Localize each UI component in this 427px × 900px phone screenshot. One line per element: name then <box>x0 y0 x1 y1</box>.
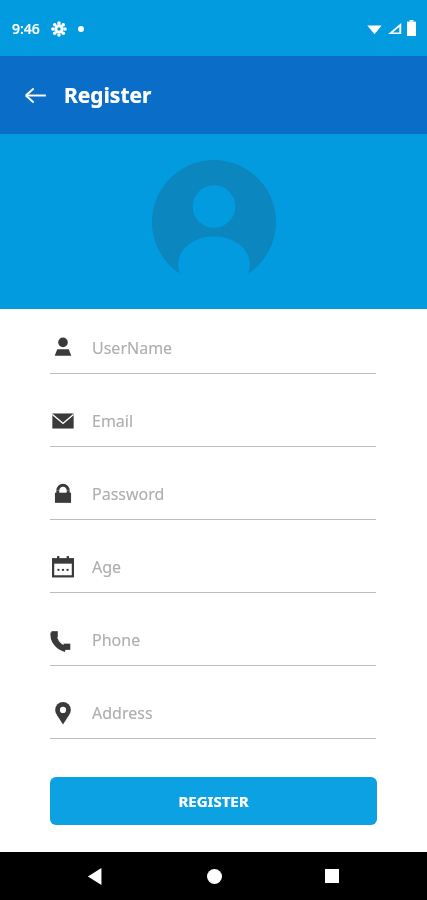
staticText: REGISTER <box>178 791 249 811</box>
staticText: Register <box>64 81 152 110</box>
button[interactable]: Email <box>0 396 427 469</box>
button[interactable]: Back <box>14 74 56 116</box>
button[interactable]: Address <box>0 688 427 761</box>
staticText: Age <box>92 556 122 578</box>
button[interactable]: Recent apps <box>309 853 355 899</box>
button[interactable]: Phone <box>0 615 427 688</box>
button[interactable]: Home <box>191 853 237 899</box>
staticText: UserName <box>92 337 173 359</box>
staticText: 9:46 <box>12 19 40 38</box>
staticText: Address <box>92 702 153 724</box>
button[interactable]: Back <box>72 853 118 899</box>
staticText: Email <box>92 410 134 432</box>
button[interactable]: Age <box>0 542 427 615</box>
button[interactable]: UserName <box>0 323 427 396</box>
staticText: Password <box>92 483 165 505</box>
staticText: Phone <box>92 629 141 651</box>
button[interactable]: REGISTER <box>50 777 377 825</box>
button[interactable]: Password <box>0 469 427 542</box>
